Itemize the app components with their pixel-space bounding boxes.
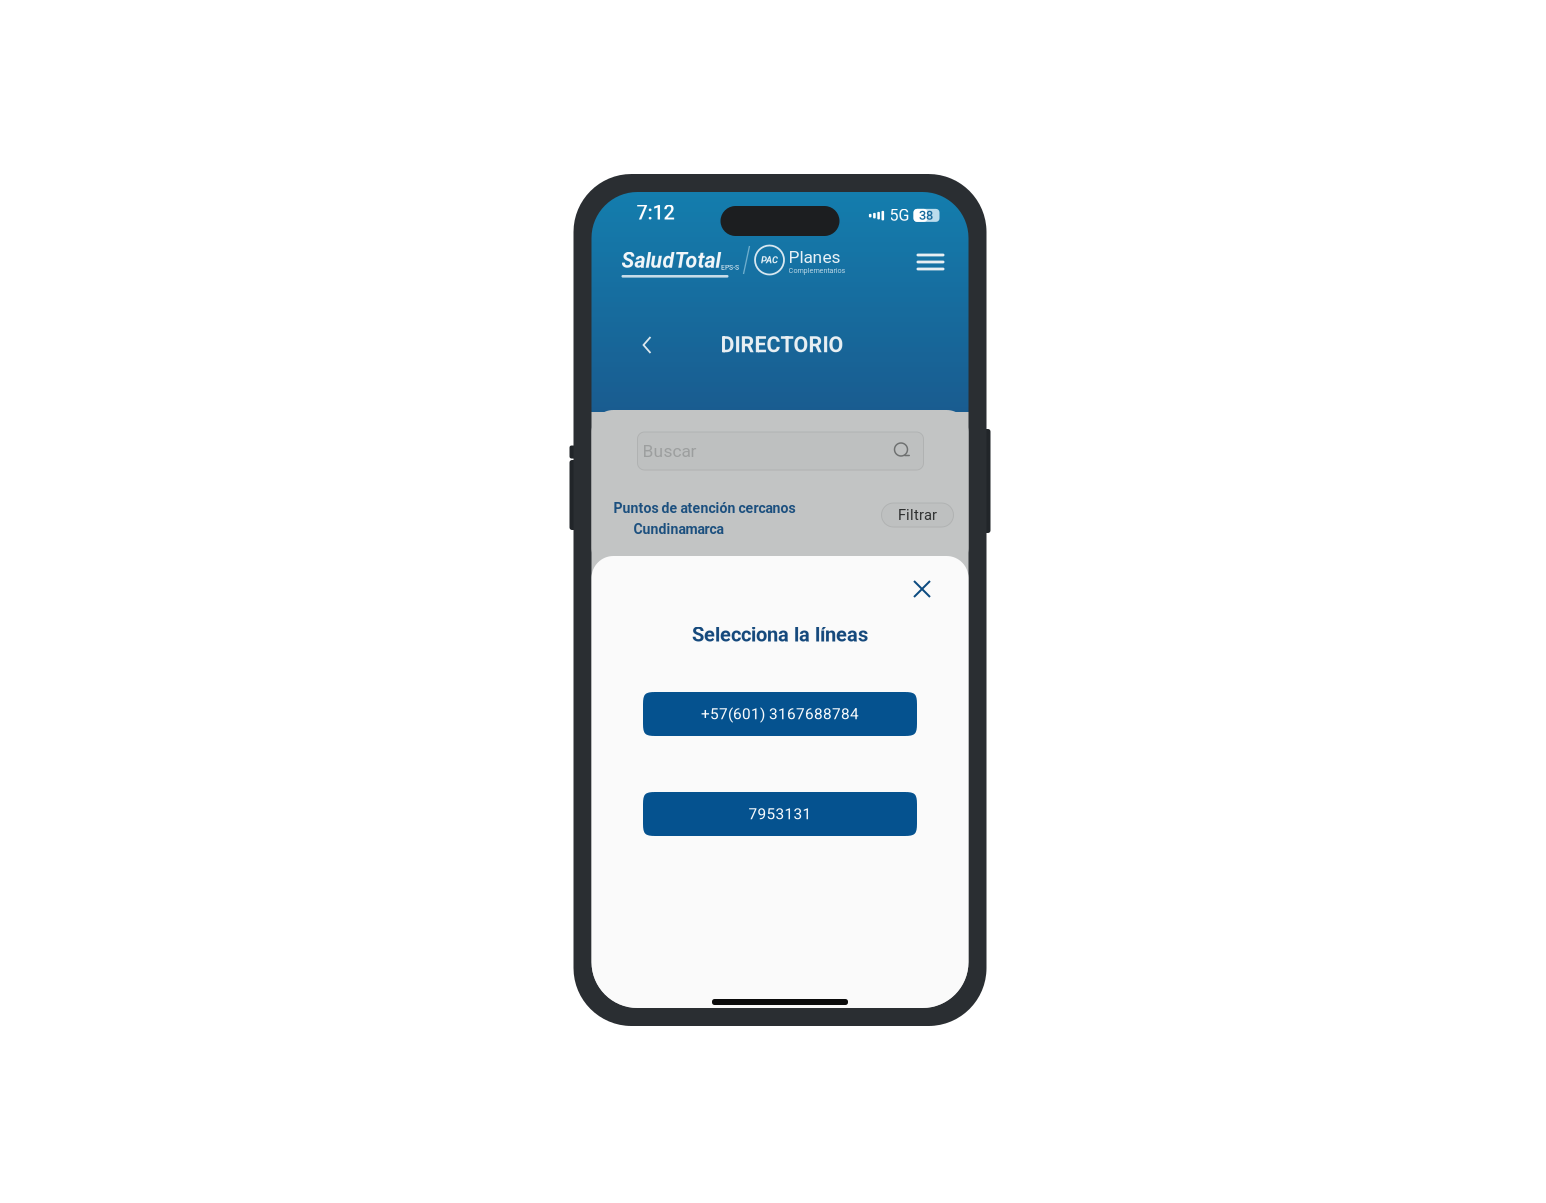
staticText: 7:12 [636,201,674,224]
staticText: DIRECTORIO [720,332,843,357]
staticText: SaludTotal [621,248,720,273]
staticText: Cundinamarca [633,521,723,537]
button[interactable]: Menú [910,245,950,279]
staticText: PAC [761,254,778,265]
staticText: Puntos de atención cercanos [613,500,795,516]
staticText: Buscar [642,441,696,461]
staticText: +57(601) 3167688784 [701,705,859,723]
staticText: Selecciona la líneas [692,623,868,646]
staticText: 7953131 [748,805,811,823]
button[interactable]: Filtrar [881,503,953,527]
staticText: 5G [889,206,909,225]
staticText: EPS-S [721,264,739,271]
staticText: Planes [788,247,840,267]
staticText: 38 [919,208,933,223]
button[interactable]: Atrás [629,327,665,363]
button[interactable]: +57(601) 3167688784 [643,692,917,736]
button[interactable]: 7953131 [643,792,917,836]
staticText: Filtrar [898,506,937,524]
staticText: Complementarios [788,266,845,275]
button[interactable]: Cerrar [905,572,939,606]
